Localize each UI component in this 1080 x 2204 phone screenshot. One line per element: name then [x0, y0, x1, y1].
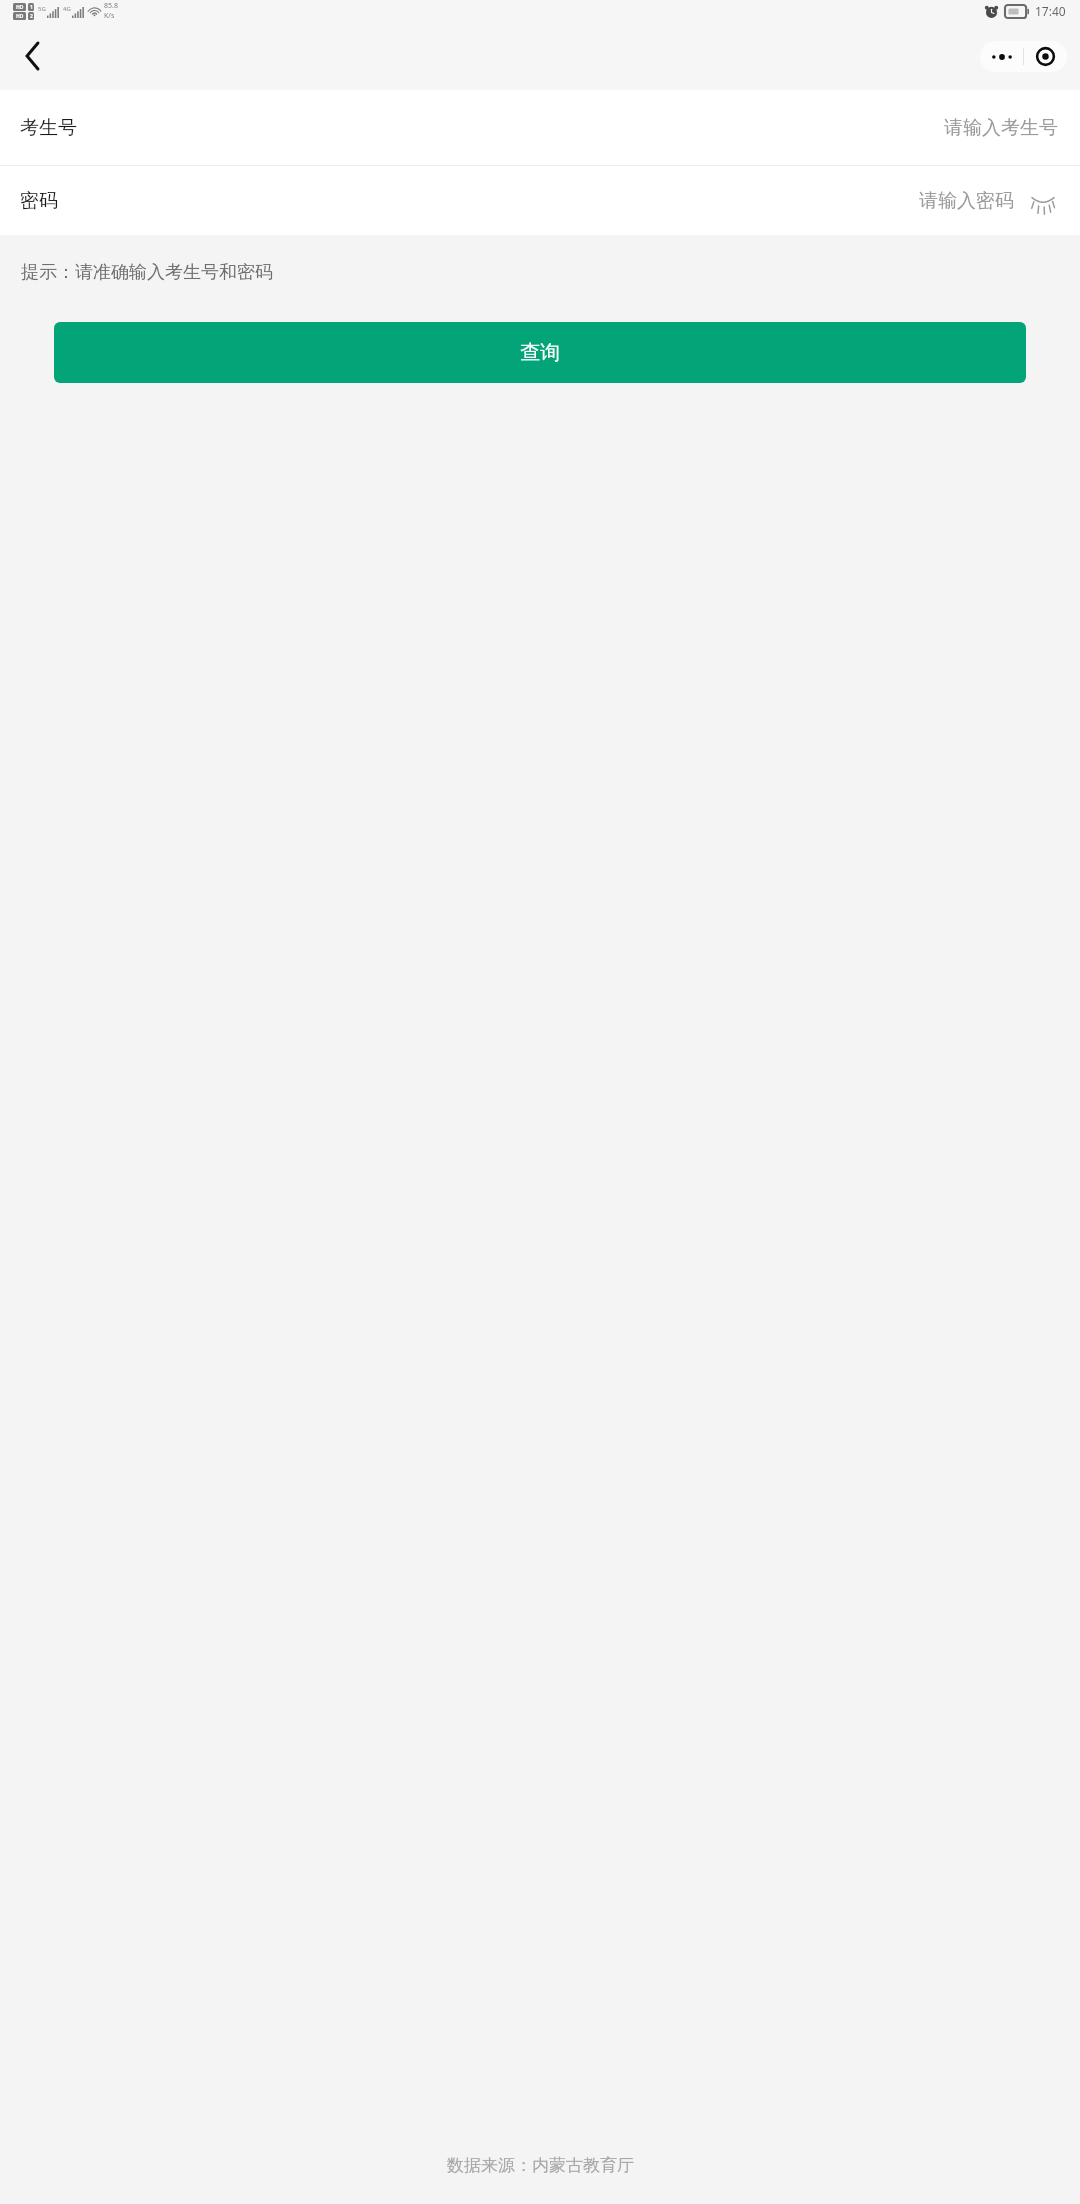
staticText: 数据来源：内蒙古教育厅	[447, 2155, 634, 2176]
staticText: HD	[16, 4, 24, 11]
staticText: HD	[16, 13, 24, 20]
button[interactable]: Close	[1024, 41, 1067, 72]
staticText: 85.8	[104, 1, 118, 11]
staticText: 查询	[520, 340, 560, 365]
staticText: 5G	[38, 5, 46, 13]
staticText: 密码	[20, 189, 58, 213]
button[interactable]: 查询	[54, 322, 1026, 383]
staticText: 17:40	[1035, 3, 1066, 19]
button[interactable]: 考生号	[0, 90, 1080, 165]
staticText: 提示：请准确输入考生号和密码	[21, 261, 273, 284]
button[interactable]: Back	[6, 30, 58, 82]
staticText: 考生号	[20, 116, 77, 140]
staticText: 请输入密码	[919, 189, 1014, 213]
staticText: 请输入考生号	[944, 116, 1058, 140]
button[interactable]: Show password	[1028, 186, 1058, 216]
staticText: 4G	[63, 5, 71, 13]
staticText: 1	[30, 4, 33, 11]
staticText: K/s	[104, 11, 115, 21]
staticText: 2	[30, 13, 33, 20]
button[interactable]: 密码	[0, 166, 1080, 235]
button[interactable]: More	[980, 41, 1023, 72]
